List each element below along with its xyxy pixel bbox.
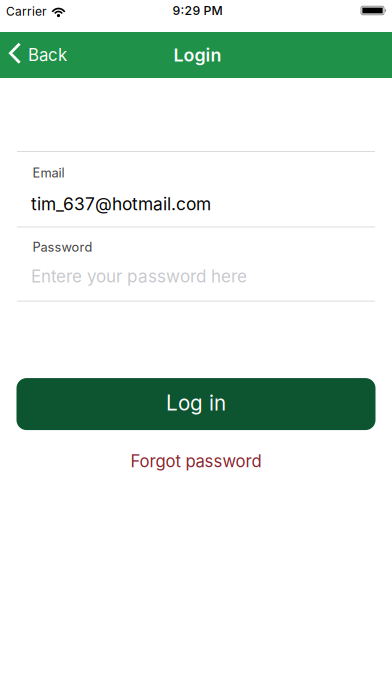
button[interactable]: Email text field xyxy=(31,193,375,214)
staticText: Login xyxy=(173,44,221,66)
staticText: tim_637@hotmail.com xyxy=(31,193,211,214)
staticText: Log in xyxy=(166,391,226,416)
staticText: Forgot password xyxy=(130,451,261,471)
staticText: Password xyxy=(32,239,92,255)
button[interactable]: Log in xyxy=(16,378,375,430)
button[interactable]: Password text field xyxy=(31,266,375,286)
button[interactable]: Back xyxy=(0,44,67,66)
staticText: Carrier xyxy=(6,4,47,19)
staticText: Entere your password here xyxy=(31,266,247,286)
button[interactable]: Forgot password xyxy=(130,451,261,471)
staticText: Back xyxy=(28,45,67,65)
staticText: 9:29 PM xyxy=(172,3,222,18)
staticText: Email xyxy=(32,165,64,180)
